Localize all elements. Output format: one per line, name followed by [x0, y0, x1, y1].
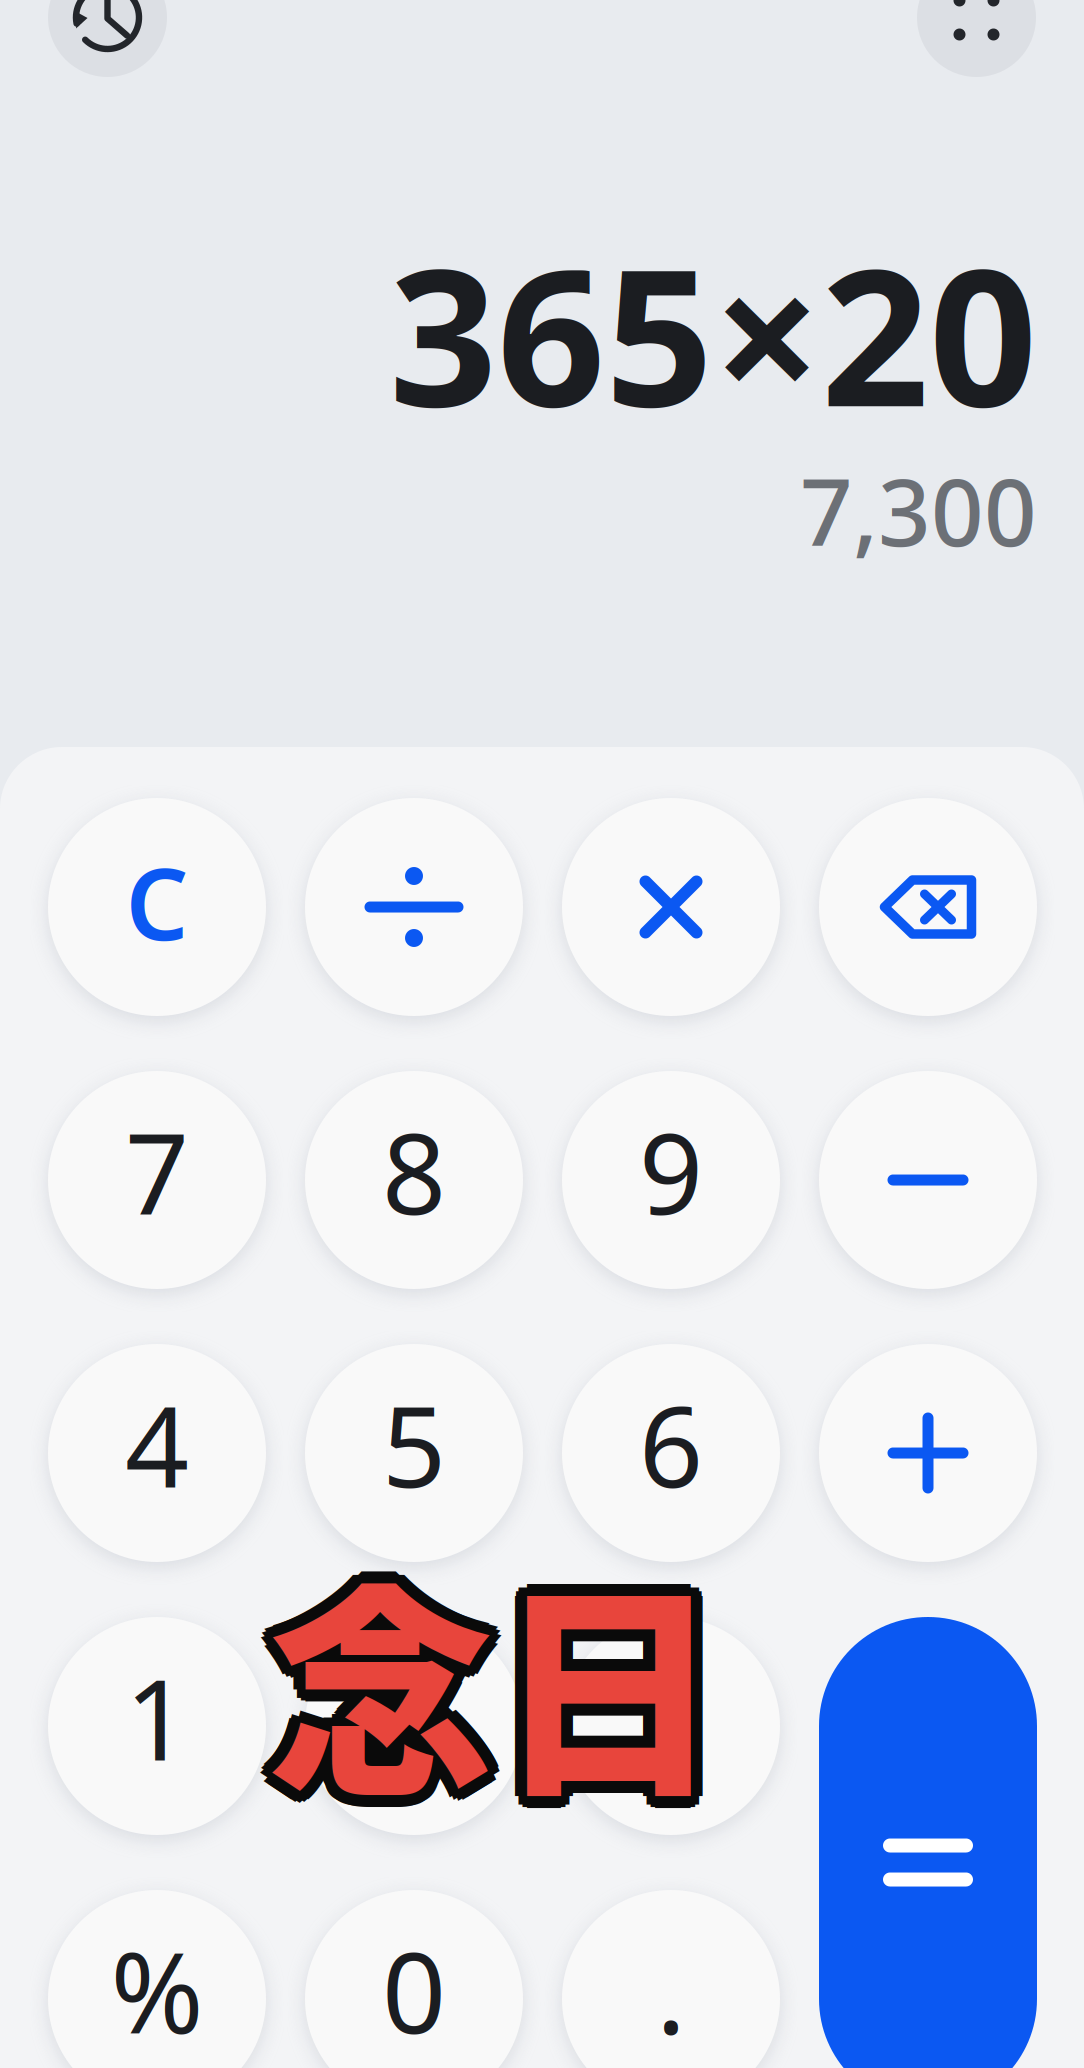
staticText: . — [656, 1916, 686, 2064]
staticText: 念 — [259, 1522, 486, 1851]
staticText: 念 — [274, 1520, 501, 1848]
button[interactable]: . — [562, 1890, 780, 2068]
staticText: 日 — [489, 1508, 716, 1836]
staticText: 念 — [268, 1514, 495, 1842]
staticText: 7 — [125, 1097, 189, 1245]
staticText: 日 — [506, 1509, 733, 1838]
button[interactable]: Equals — [819, 1617, 1037, 2068]
staticText: 念 — [268, 1502, 495, 1830]
staticText: 念 — [257, 1509, 484, 1838]
staticText: 2 — [382, 1643, 446, 1791]
button[interactable]: 4 — [48, 1344, 266, 1562]
button[interactable]: Multiply — [562, 798, 780, 1016]
staticText: 6 — [639, 1370, 703, 1518]
staticText: 日 — [489, 1520, 716, 1848]
staticText: 日 — [486, 1522, 713, 1851]
staticText: 念 — [268, 1526, 495, 1854]
button[interactable]: 1 — [48, 1617, 266, 1835]
staticText: 念 — [262, 1520, 489, 1848]
button[interactable]: 5 — [305, 1344, 523, 1562]
staticText: 日 — [484, 1509, 711, 1838]
staticText: C — [125, 836, 188, 967]
button[interactable]: Plus — [819, 1344, 1037, 1562]
staticText: 念 — [279, 1509, 506, 1838]
staticText: 日 — [507, 1514, 734, 1842]
button[interactable]: History — [48, 0, 167, 77]
button[interactable]: Backspace — [819, 798, 1037, 1016]
button[interactable]: 8 — [305, 1071, 523, 1289]
staticText: 9 — [639, 1097, 703, 1245]
staticText: 念 — [273, 1525, 500, 1853]
button[interactable]: 9 — [562, 1071, 780, 1289]
staticText: 念 — [276, 1522, 503, 1851]
button[interactable]: % — [48, 1890, 266, 2068]
staticText: % — [110, 1916, 203, 2064]
button[interactable]: 6 — [562, 1344, 780, 1562]
button[interactable]: Minus — [819, 1071, 1037, 1289]
staticText: 日 — [495, 1514, 722, 1842]
staticText: 念 — [263, 1525, 490, 1853]
button[interactable]: 2 — [305, 1617, 523, 1835]
staticText: 日 — [501, 1508, 728, 1836]
button[interactable]: 3 — [562, 1617, 780, 1835]
staticText: 4 — [125, 1370, 189, 1518]
staticText: 1 — [125, 1643, 189, 1791]
staticText: 念 — [280, 1514, 507, 1842]
staticText: 8 — [382, 1097, 446, 1245]
staticText: 念 — [256, 1514, 483, 1842]
staticText: 日 — [495, 1502, 722, 1830]
staticText: 7,300 — [800, 449, 1037, 572]
staticText: 念 — [276, 1505, 503, 1834]
staticText: 日 — [486, 1505, 713, 1834]
staticText: 0 — [382, 1916, 446, 2064]
staticText: 念 — [274, 1508, 501, 1836]
staticText: 日 — [503, 1505, 730, 1834]
staticText: 日 — [483, 1514, 710, 1842]
staticText: 念 — [262, 1508, 489, 1836]
staticText: 日 — [500, 1525, 727, 1853]
staticText: 365×20 — [389, 207, 1037, 458]
staticText: 5 — [382, 1370, 446, 1518]
staticText: 日 — [490, 1525, 717, 1853]
staticText: 日 — [503, 1522, 730, 1851]
staticText: 日 — [495, 1526, 722, 1854]
staticText: 3 — [639, 1643, 703, 1791]
button[interactable]: 0 — [305, 1890, 523, 2068]
button[interactable]: Clear — [48, 798, 266, 1016]
button[interactable]: 7 — [48, 1071, 266, 1289]
staticText: 念 — [259, 1505, 486, 1834]
button[interactable]: More options — [917, 0, 1036, 77]
staticText: 日 — [501, 1520, 728, 1848]
button[interactable]: Divide — [305, 798, 523, 1016]
